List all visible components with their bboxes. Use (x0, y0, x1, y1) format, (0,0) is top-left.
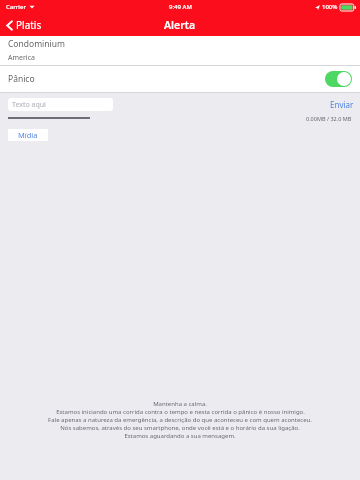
button[interactable]: Pânico toggle (325, 71, 352, 87)
staticText: Nós sabemos, através do seu smartphone, … (60, 424, 300, 432)
staticText: Condominium (8, 38, 65, 50)
staticText: Estamos aguardando a sua mensagem. (124, 432, 236, 440)
staticText: Mídia (18, 130, 38, 140)
button[interactable]: Mídia (8, 129, 48, 141)
button[interactable]: Enviar (324, 97, 360, 112)
staticText: 0.00MB / 32.0 MB (306, 115, 352, 122)
staticText: Texto aqui (12, 100, 46, 110)
staticText: Carrier (6, 3, 26, 11)
staticText: 100% (322, 3, 338, 11)
staticText: Fale apenas a natureza da emergência, a … (48, 416, 312, 424)
button[interactable]: Platis (0, 15, 48, 35)
button[interactable]: Condominium (0, 36, 360, 51)
staticText: Mantenha a calma. (153, 400, 207, 408)
staticText: America (8, 53, 35, 63)
button[interactable]: Texto aqui (8, 98, 113, 111)
button[interactable]: America (0, 51, 360, 65)
staticText: 9:49 AM (169, 3, 192, 11)
staticText: Alerta (164, 18, 196, 32)
staticText: Enviar (330, 99, 354, 110)
staticText: Estamos iniciando uma corrida contra o t… (56, 408, 305, 416)
staticText: Pânico (8, 73, 325, 85)
staticText: Platis (16, 18, 42, 32)
button[interactable]: Pânico (0, 66, 360, 92)
